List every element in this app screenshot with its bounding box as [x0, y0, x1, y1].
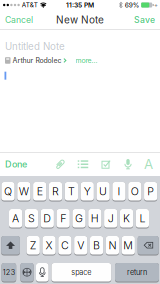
staticText: Z — [30, 239, 37, 252]
button[interactable]: I — [112, 182, 126, 201]
button[interactable]: Dictation — [36, 263, 49, 282]
button[interactable]: A — [9, 209, 22, 228]
button[interactable]: M — [122, 236, 135, 255]
button[interactable]: K — [120, 209, 133, 228]
staticText: J — [108, 212, 114, 225]
button[interactable]: Y — [81, 182, 94, 201]
button[interactable]: Delete — [138, 236, 159, 255]
staticText: A — [144, 156, 153, 172]
staticText: Done — [5, 159, 27, 170]
button[interactable]: Save — [134, 14, 160, 25]
button[interactable]: Shift — [1, 236, 20, 255]
button[interactable]: S — [25, 209, 38, 228]
staticText: K — [123, 212, 130, 225]
staticText: R — [52, 185, 59, 198]
button[interactable]: P — [144, 182, 157, 201]
button[interactable]: Checkbox — [101, 160, 110, 169]
staticText: more... — [75, 56, 97, 65]
button[interactable]: Q — [1, 182, 15, 201]
staticText: B — [93, 239, 100, 252]
staticText: A — [12, 212, 19, 225]
button[interactable]: Next keyboard — [20, 263, 34, 282]
staticText: V — [77, 239, 84, 252]
staticText: C — [61, 239, 69, 252]
button[interactable]: V — [74, 236, 87, 255]
button[interactable]: D — [41, 209, 54, 228]
button[interactable]: N — [106, 236, 119, 255]
button[interactable]: Numbers — [1, 263, 16, 282]
button[interactable]: E — [33, 182, 46, 201]
staticText: New Note — [56, 14, 104, 26]
staticText: F — [60, 212, 66, 225]
button[interactable]: Z — [27, 236, 40, 255]
staticText: W — [19, 185, 29, 198]
staticText: 69% — [125, 1, 140, 9]
button[interactable]: B — [90, 236, 103, 255]
button[interactable]: Cancel — [0, 14, 33, 25]
button[interactable]: W — [17, 182, 30, 201]
staticText: I — [117, 185, 120, 198]
button[interactable]: H — [88, 209, 101, 228]
staticText: Save — [134, 14, 155, 25]
button[interactable]: Arthur Rodolec — [0, 52, 97, 65]
button[interactable]: space — [51, 263, 111, 282]
button[interactable]: Done — [0, 159, 27, 170]
staticText: Q — [4, 185, 12, 198]
button[interactable]: T — [65, 182, 78, 201]
button[interactable]: F — [56, 209, 70, 228]
button[interactable]: G — [72, 209, 86, 228]
staticText: AT&T — [22, 1, 38, 9]
button[interactable]: L — [136, 209, 149, 228]
staticText: Arthur Rodolec — [12, 56, 61, 65]
staticText: N — [108, 239, 116, 252]
button[interactable]: Bullet list — [78, 160, 88, 169]
button[interactable]: Format text — [144, 156, 153, 172]
button[interactable]: O — [128, 182, 141, 201]
staticText: P — [147, 185, 154, 198]
staticText: T — [68, 185, 75, 198]
button[interactable]: X — [42, 236, 56, 255]
staticText: H — [91, 212, 99, 225]
button[interactable]: U — [96, 182, 110, 201]
staticText: + — [154, 1, 158, 9]
button[interactable]: Attach — [54, 159, 65, 170]
staticText: Cancel — [5, 14, 33, 25]
button[interactable]: R — [49, 182, 62, 201]
staticText: E — [37, 185, 43, 198]
staticText: Untitled Note — [5, 40, 65, 52]
button[interactable]: return — [115, 263, 159, 282]
staticText: U — [99, 185, 107, 198]
staticText: O — [131, 185, 139, 198]
staticText: S — [28, 212, 35, 225]
button[interactable]: Dictate — [124, 159, 132, 169]
staticText: G — [75, 212, 83, 225]
staticText: return — [127, 268, 147, 277]
staticText: Y — [84, 185, 91, 198]
staticText: X — [46, 239, 53, 252]
button[interactable]: J — [104, 209, 117, 228]
staticText: L — [139, 212, 145, 225]
button[interactable]: C — [58, 236, 71, 255]
staticText: M — [123, 239, 133, 252]
staticText: 11:35 PM — [66, 1, 94, 9]
staticText: D — [43, 212, 51, 225]
staticText: 123 — [3, 268, 15, 277]
staticText: space — [71, 268, 91, 277]
